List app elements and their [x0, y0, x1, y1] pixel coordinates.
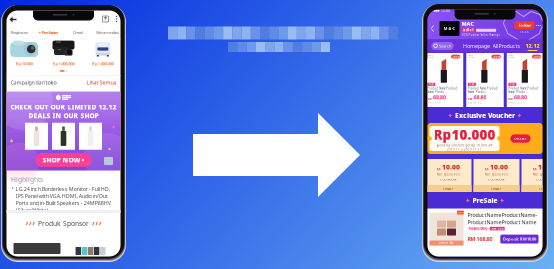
staticText: Penilaian — [41, 30, 58, 35]
staticText: COLLECT — [514, 137, 527, 140]
staticText: Best Seller — [427, 56, 434, 58]
staticText: RM 90.00 — [468, 101, 482, 104]
staticText: COLLECT — [539, 187, 550, 190]
staticText: Min. Spend $50 — [533, 173, 554, 176]
staticText: TPOLYMGOWP — [535, 178, 553, 181]
staticText: -RM 20K — [491, 227, 504, 230]
staticText: RM — [468, 97, 473, 101]
staticText: All Products — [492, 42, 520, 50]
staticText: Produk Sponsor — [38, 219, 89, 228]
button[interactable]: Back — [7, 14, 19, 25]
staticText: Rp10.000 — [16, 61, 33, 66]
staticText: RM 168.80 — [467, 235, 492, 243]
button[interactable]: 12.12 — [525, 42, 539, 51]
staticText: -50% — [452, 55, 459, 58]
staticText: PreSale — [472, 196, 497, 205]
staticText: Min. Spend $50 — [437, 173, 460, 176]
staticText: -50% — [493, 55, 500, 58]
staticText: $$ — [485, 168, 489, 171]
staticText: 2019.11.3-2019.11.11 — [447, 148, 482, 151]
staticText: -50% — [457, 211, 464, 214]
staticText: Limited Sale — [438, 241, 454, 245]
staticText: Best Seller — [508, 56, 515, 58]
staticText: Search — [439, 43, 451, 49]
button[interactable]: COLLECT — [521, 185, 554, 192]
button[interactable]: Deposit RM10.00 — [500, 235, 538, 243]
button[interactable]: Penilaian — [34, 30, 63, 35]
button[interactable]: All Products — [492, 42, 520, 50]
button[interactable]: COLLECT — [473, 185, 519, 192]
staticText: LazMall — [463, 28, 474, 32]
button[interactable]: Detail — [63, 30, 93, 35]
staticText: L'OREAL — [508, 55, 514, 56]
button[interactable]: Rekomendasi — [93, 30, 122, 35]
staticText: 68.80 — [514, 94, 527, 101]
staticText: 10.00 — [442, 162, 460, 171]
staticText: 68.80 — [433, 94, 446, 101]
staticText: Product NameProduct Name Produ... — [427, 87, 457, 94]
button[interactable]: Lihat Semua — [86, 79, 116, 86]
staticText: Campaign dari toko — [10, 79, 56, 86]
staticText: COLLECT — [443, 187, 454, 190]
button[interactable]: Search — [431, 42, 454, 50]
staticText: 10.00 — [538, 162, 554, 171]
staticText: Exclusive Voucher — [455, 111, 515, 120]
staticText: MAC — [461, 20, 473, 27]
staticText: TPOLYMGOWP — [439, 178, 457, 181]
staticText: L'OREAL — [427, 55, 433, 56]
staticText: 大促 — [509, 83, 515, 86]
button[interactable]: Follow — [514, 21, 534, 29]
button[interactable]: Ringkasan — [4, 30, 34, 35]
staticText: 大促 — [428, 83, 434, 86]
button[interactable]: COLLECT — [510, 134, 531, 143]
staticText: PreSale Only — [468, 227, 487, 230]
staticText: $$ — [533, 168, 537, 171]
button[interactable]: More options — [114, 14, 119, 24]
staticText: 12:00 — [441, 8, 450, 13]
staticText: 12.12 — [525, 42, 539, 49]
staticText: Highlights — [11, 175, 43, 184]
staticText: Product NameProduct Name Produ... — [468, 87, 498, 94]
staticText: Detail — [73, 30, 83, 35]
staticText: ●●● — [433, 9, 439, 12]
staticText: RM — [427, 97, 432, 101]
staticText: Min. Spend $50 — [485, 173, 508, 176]
staticText: Ringkasan — [11, 30, 28, 35]
button[interactable]: Share — [100, 13, 111, 24]
button[interactable]: COLLECT — [425, 185, 471, 192]
staticText: DEALS IN OUR SHOP — [28, 111, 98, 120]
staticText: SHOP NOW — [42, 156, 80, 164]
staticText: Lihat Semua — [86, 79, 116, 86]
staticText: $$ — [437, 168, 441, 171]
staticText: Rp1.000.000 — [52, 61, 74, 66]
staticText: TPOLYMGOWP — [487, 178, 505, 181]
staticText: M·A·C — [443, 26, 455, 31]
staticText: 10.00 — [490, 162, 508, 171]
staticText: Rekomendasi — [96, 30, 119, 35]
button[interactable]: Back — [428, 23, 437, 34]
staticText: 90% Positive Seller Ratings — [461, 33, 499, 37]
staticText: -50% — [533, 55, 540, 58]
staticText: Homepage — [463, 42, 490, 50]
button[interactable]: SHOP NOW — [35, 153, 91, 167]
staticText: 大促 — [469, 83, 475, 86]
staticText: Product NameProduct Name Produ... — [508, 87, 538, 94]
staticText: ProductNameProductNameProductNameProduct… — [467, 211, 537, 226]
staticText: Rp1.000.000 — [92, 61, 114, 66]
staticText: Deposit RM10.00 — [503, 236, 536, 242]
staticText: Follow — [518, 23, 530, 28]
staticText: CHECK OUT OUR LIMITED 12.12 — [10, 102, 116, 111]
button[interactable]: More options — [534, 23, 543, 28]
staticText: RM 90.00 — [427, 101, 441, 104]
staticText: COLLECT — [491, 187, 502, 190]
staticText: RM 90.00 — [508, 101, 522, 104]
staticText: 68.80 — [473, 94, 486, 101]
staticText: LG 24 inch Borderless Monitor - Full HD,… — [16, 185, 111, 214]
staticText: Rp10.000 — [433, 126, 495, 143]
staticText: RM — [508, 97, 513, 101]
staticText: Best Seller — [468, 56, 475, 58]
staticText: L'OREAL — [468, 55, 474, 56]
button[interactable]: Homepage — [463, 42, 490, 50]
staticText: 76.5K — [520, 30, 529, 34]
staticText: Spend Rp 500.000 get Rp 10.000 off — [436, 144, 492, 147]
